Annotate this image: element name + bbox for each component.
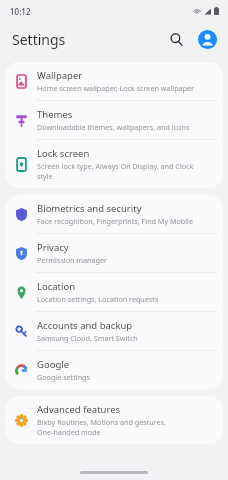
staticText: Bixby Routines, Motions and gestures, [37,417,166,427]
staticText: Google settings [37,372,90,382]
button[interactable]: Wallpaper [5,62,223,100]
button[interactable]: Themes [5,101,223,139]
button[interactable]: Biometrics and security [5,195,223,233]
button[interactable]: Search [165,28,187,50]
staticText: One-handed mode [37,427,101,437]
staticText: Accounts and backup [37,319,133,332]
staticText: Downloadable themes, wallpapers, and ico… [37,122,190,132]
staticText: Permission manager [37,255,108,265]
button[interactable]: Account [197,29,218,50]
staticText: Settings [12,30,66,49]
staticText: style [37,171,53,181]
staticText: Home screen wallpaper, Lock screen wallp… [37,83,195,93]
button[interactable]: Advanced features [5,396,223,444]
button[interactable]: Accounts and backup [5,312,223,350]
button[interactable]: Location [5,273,223,311]
staticText: Screen lock type, Always On Display, and… [37,161,194,171]
staticText: Google [37,358,70,371]
button[interactable]: Google [5,351,223,389]
staticText: 10:12 [10,6,31,17]
staticText: Wallpaper [37,69,83,82]
staticText: Advanced features [37,403,121,416]
staticText: Biometrics and security [37,202,142,215]
staticText: Location settings, Location requests [37,294,159,304]
staticText: Themes [37,108,73,121]
staticText: Face recognition, Fingerprints, Find My … [37,216,193,226]
button[interactable]: Lock screen [5,140,223,188]
staticText: Lock screen [37,147,90,160]
staticText: Privacy [37,241,69,254]
staticText: Location [37,280,76,293]
button[interactable]: Privacy [5,234,223,272]
staticText: Samsung Cloud, Smart Switch [37,333,138,343]
